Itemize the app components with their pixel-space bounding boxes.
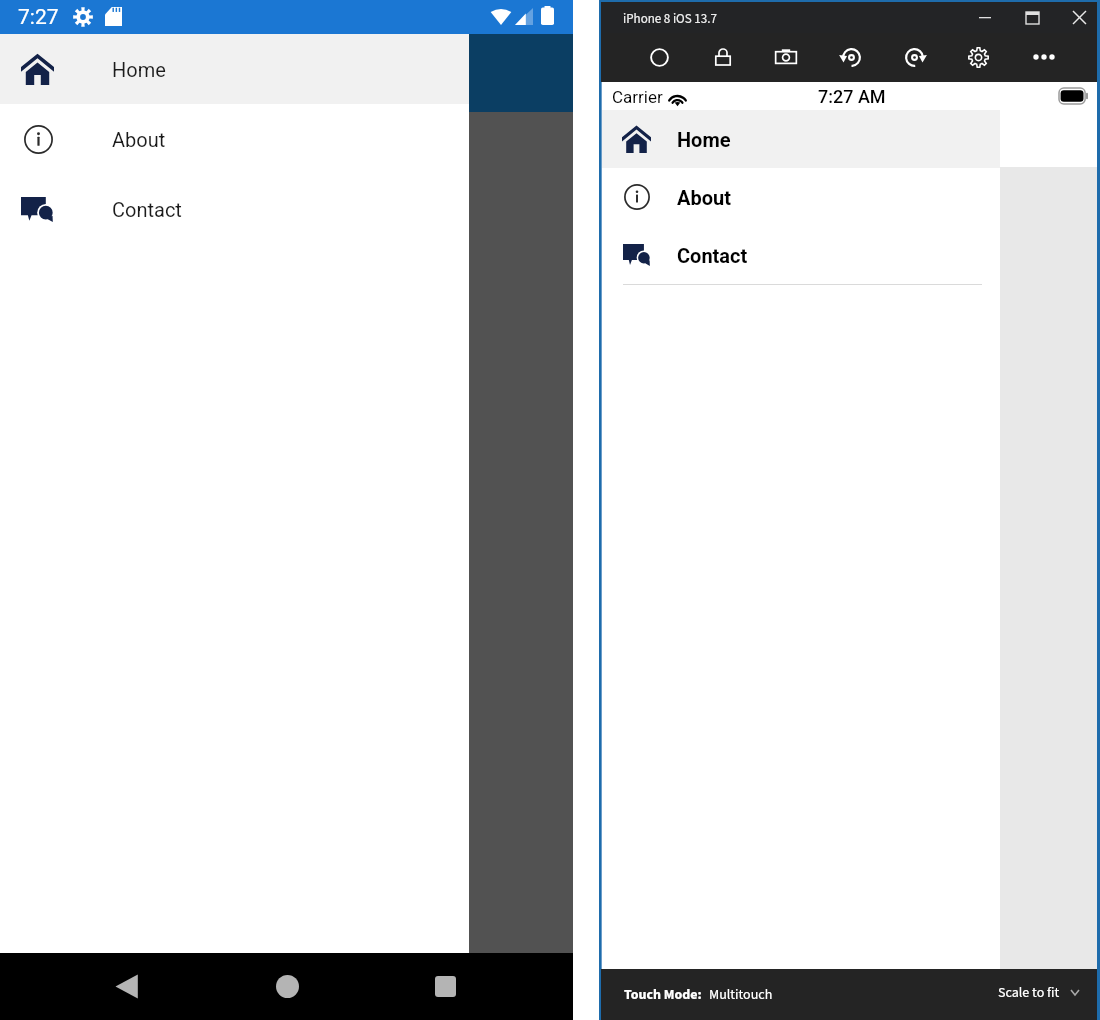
staticText: Contact [112,198,182,221]
button[interactable]: Lock [702,36,744,78]
button[interactable]: Contact [0,174,469,244]
button[interactable]: Close [1056,2,1100,33]
staticText: Home [112,58,166,81]
button[interactable]: Home [262,963,312,1009]
staticText: Scale to fit [998,983,1060,1003]
staticText: iPhone 8 iOS 13.7 [623,10,717,29]
button[interactable]: Scale to fit [992,979,1093,1006]
button[interactable]: Recents [420,963,470,1009]
button[interactable]: Rotate left [830,36,872,78]
staticText: About [112,128,166,151]
staticText: Touch Mode: [624,985,702,1005]
button[interactable]: About [0,104,469,174]
staticText: About [677,186,731,209]
button[interactable]: Maximize [1009,2,1055,33]
staticText: Home [677,128,731,151]
button[interactable]: Contact [602,226,1000,284]
staticText: Carrier [612,87,663,107]
button[interactable]: Minimize [962,2,1008,33]
button[interactable]: Home [0,34,469,104]
button[interactable]: More options [1023,36,1065,78]
staticText: 7:27 AM [818,86,886,107]
button[interactable]: Settings [957,36,999,78]
button[interactable]: Back [102,963,152,1009]
button[interactable]: Home [602,110,1000,168]
button[interactable]: Screenshot [765,36,807,78]
staticText: Contact [677,244,748,267]
button[interactable]: About [602,168,1000,226]
button[interactable]: Rotate right [893,36,935,78]
staticText: Multitouch [709,985,773,1005]
staticText: 7:27 [18,5,59,30]
button[interactable]: Home [638,36,680,78]
